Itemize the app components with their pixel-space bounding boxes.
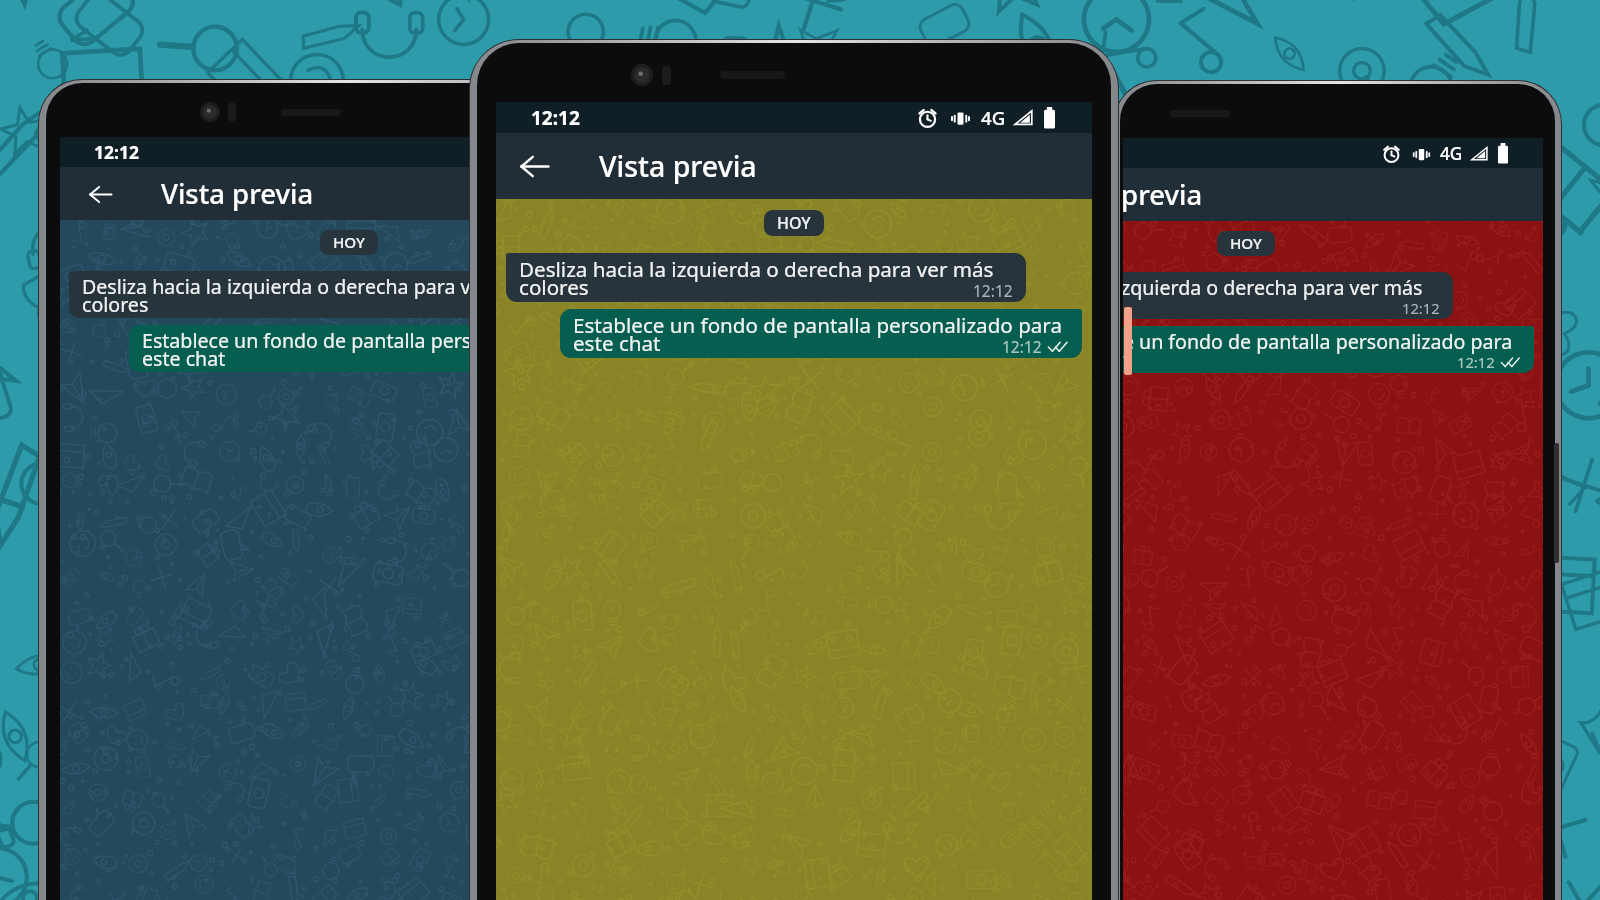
button[interactable]: Establece un fondo de pantalla personali…: [1123, 326, 1534, 373]
button[interactable]: Atrás: [496, 133, 1092, 199]
staticText: 12:12: [1002, 336, 1042, 357]
staticText: 12:12: [513, 297, 551, 317]
staticText: 12:12: [1402, 298, 1440, 318]
button[interactable]: HOY: [320, 230, 378, 255]
staticText: 12:12: [94, 140, 139, 164]
button[interactable]: HOY: [764, 210, 824, 236]
button[interactable]: Atrás: [510, 142, 558, 190]
staticText: Desliza hacia la izquierda o derecha par…: [82, 273, 551, 317]
button[interactable]: Establece un fondo de pantalla personali…: [560, 309, 1082, 358]
staticText: Establece un fondo de pantalla personali…: [1123, 328, 1521, 372]
button[interactable]: Desliza hacia la izquierda o derecha par…: [506, 253, 1026, 302]
staticText: 4G: [1440, 142, 1463, 165]
staticText: Vista previa: [599, 147, 757, 186]
button[interactable]: Atrás: [1123, 168, 1543, 221]
staticText: Vista previa: [1123, 176, 1203, 213]
button[interactable]: Desliza hacia la izquierda o derecha par…: [69, 271, 564, 318]
staticText: 12:12: [531, 105, 580, 131]
staticText: HOY: [333, 232, 365, 253]
staticText: HOY: [1230, 233, 1262, 254]
button[interactable]: Establece un fondo de pantalla personali…: [129, 325, 629, 372]
staticText: Establece un fondo de pantalla personali…: [573, 311, 1069, 357]
staticText: Establece un fondo de pantalla personali…: [142, 327, 616, 371]
staticText: 12:12: [1457, 352, 1495, 372]
staticText: Desliza hacia la izquierda o derecha par…: [1123, 274, 1440, 318]
button[interactable]: Atrás: [81, 175, 119, 213]
staticText: HOY: [777, 212, 811, 234]
button[interactable]: Desliza hacia la izquierda o derecha par…: [1123, 272, 1453, 319]
staticText: Vista previa: [161, 175, 314, 212]
staticText: Desliza hacia la izquierda o derecha par…: [519, 255, 1013, 301]
staticText: 12:12: [973, 280, 1013, 301]
button[interactable]: HOY: [1217, 231, 1275, 256]
staticText: 12:12: [552, 351, 590, 371]
staticText: 4G: [981, 105, 1006, 130]
button[interactable]: Atrás: [60, 167, 638, 220]
